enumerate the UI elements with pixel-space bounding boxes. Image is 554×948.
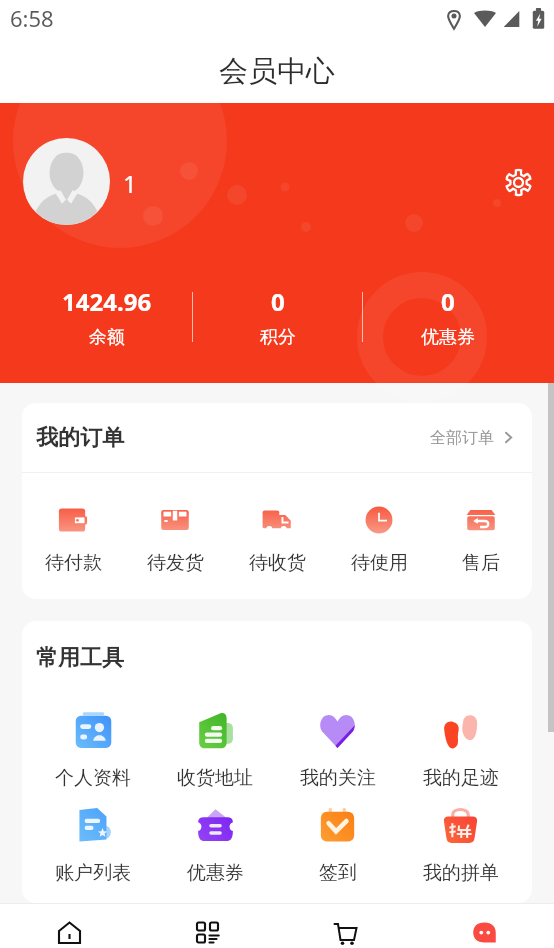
staticText: 优惠券 (421, 326, 475, 349)
staticText: 积分 (260, 326, 296, 349)
button[interactable]: 收货地址 (154, 712, 276, 790)
staticText: 待发货 (147, 551, 204, 575)
staticText: 会员中心 (219, 53, 335, 90)
button[interactable]: 优惠券 (154, 807, 276, 885)
button[interactable]: 我的足迹 (399, 712, 522, 790)
staticText: 常用工具 (36, 644, 124, 672)
button[interactable]: 我的订单 (22, 403, 532, 472)
staticText: 待使用 (351, 551, 408, 575)
button[interactable]: 售后 (430, 504, 532, 575)
staticText: 0 (271, 285, 285, 318)
staticText: 1 (123, 167, 137, 200)
button[interactable]: 1424.96 (22, 285, 192, 349)
staticText: 我的足迹 (423, 766, 499, 790)
staticText: 我的拼单 (423, 861, 499, 885)
staticText: 余额 (89, 326, 125, 349)
button[interactable]: 签到 (276, 807, 399, 885)
button[interactable]: 个人资料 (32, 712, 154, 790)
button[interactable]: 待收货 (226, 504, 328, 575)
staticText: 账户列表 (55, 861, 131, 885)
staticText: 个人资料 (55, 766, 131, 790)
staticText: 1424.96 (62, 285, 152, 318)
staticText: 优惠券 (187, 861, 244, 885)
button[interactable]: 我的关注 (276, 712, 399, 790)
button[interactable]: Category (138, 917, 276, 948)
button[interactable]: 账户列表 (32, 807, 154, 885)
button[interactable]: 待发货 (124, 504, 226, 575)
button[interactable]: Mine (415, 917, 554, 948)
button[interactable]: 我的拼单 (399, 807, 522, 885)
button[interactable]: 待付款 (22, 504, 124, 575)
staticText: 待付款 (45, 551, 102, 575)
staticText: 我的关注 (300, 766, 376, 790)
button[interactable]: Cart (276, 917, 415, 948)
staticText: 6:58 (10, 3, 54, 33)
staticText: 签到 (319, 861, 357, 885)
staticText: 待收货 (249, 551, 306, 575)
staticText: 0 (441, 285, 455, 318)
staticText: 全部订单 (430, 428, 494, 448)
button[interactable]: 0 (363, 285, 532, 349)
button[interactable]: 待使用 (328, 504, 430, 575)
button[interactable]: Settings (497, 161, 539, 203)
staticText: 收货地址 (177, 766, 253, 790)
button[interactable] (23, 138, 110, 225)
button[interactable]: Home (0, 917, 138, 948)
staticText: 我的订单 (36, 424, 124, 452)
staticText: 售后 (462, 551, 500, 575)
button[interactable]: 0 (193, 285, 362, 349)
